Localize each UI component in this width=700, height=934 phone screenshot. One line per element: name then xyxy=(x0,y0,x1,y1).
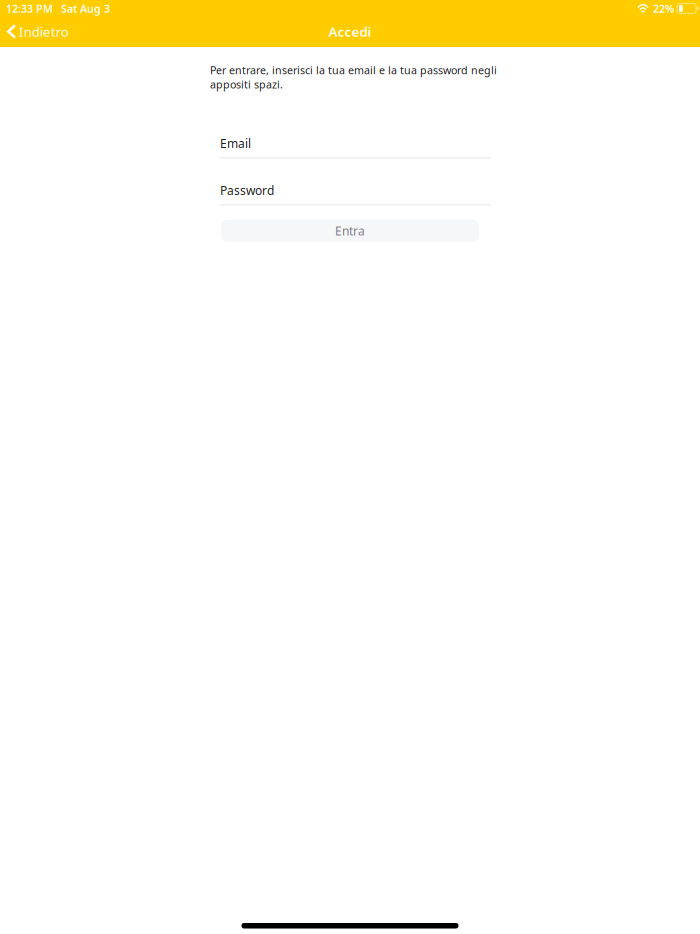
staticText: 22% xyxy=(653,1,674,16)
button[interactable]: Password xyxy=(219,182,491,205)
staticText: Sat Aug 3 xyxy=(61,1,110,16)
button[interactable]: Email xyxy=(219,135,491,158)
staticText: Per entrare, inserisci la tua email e la… xyxy=(210,63,497,91)
staticText: Indietro xyxy=(19,23,69,40)
staticText: Password xyxy=(220,182,274,198)
staticText: Accedi xyxy=(328,23,371,40)
staticText: Email xyxy=(220,135,251,151)
staticText: Entra xyxy=(335,223,365,239)
staticText: 12:33 PM xyxy=(6,1,53,16)
button[interactable]: Indietro xyxy=(0,17,77,46)
button[interactable]: Entra xyxy=(221,220,479,242)
